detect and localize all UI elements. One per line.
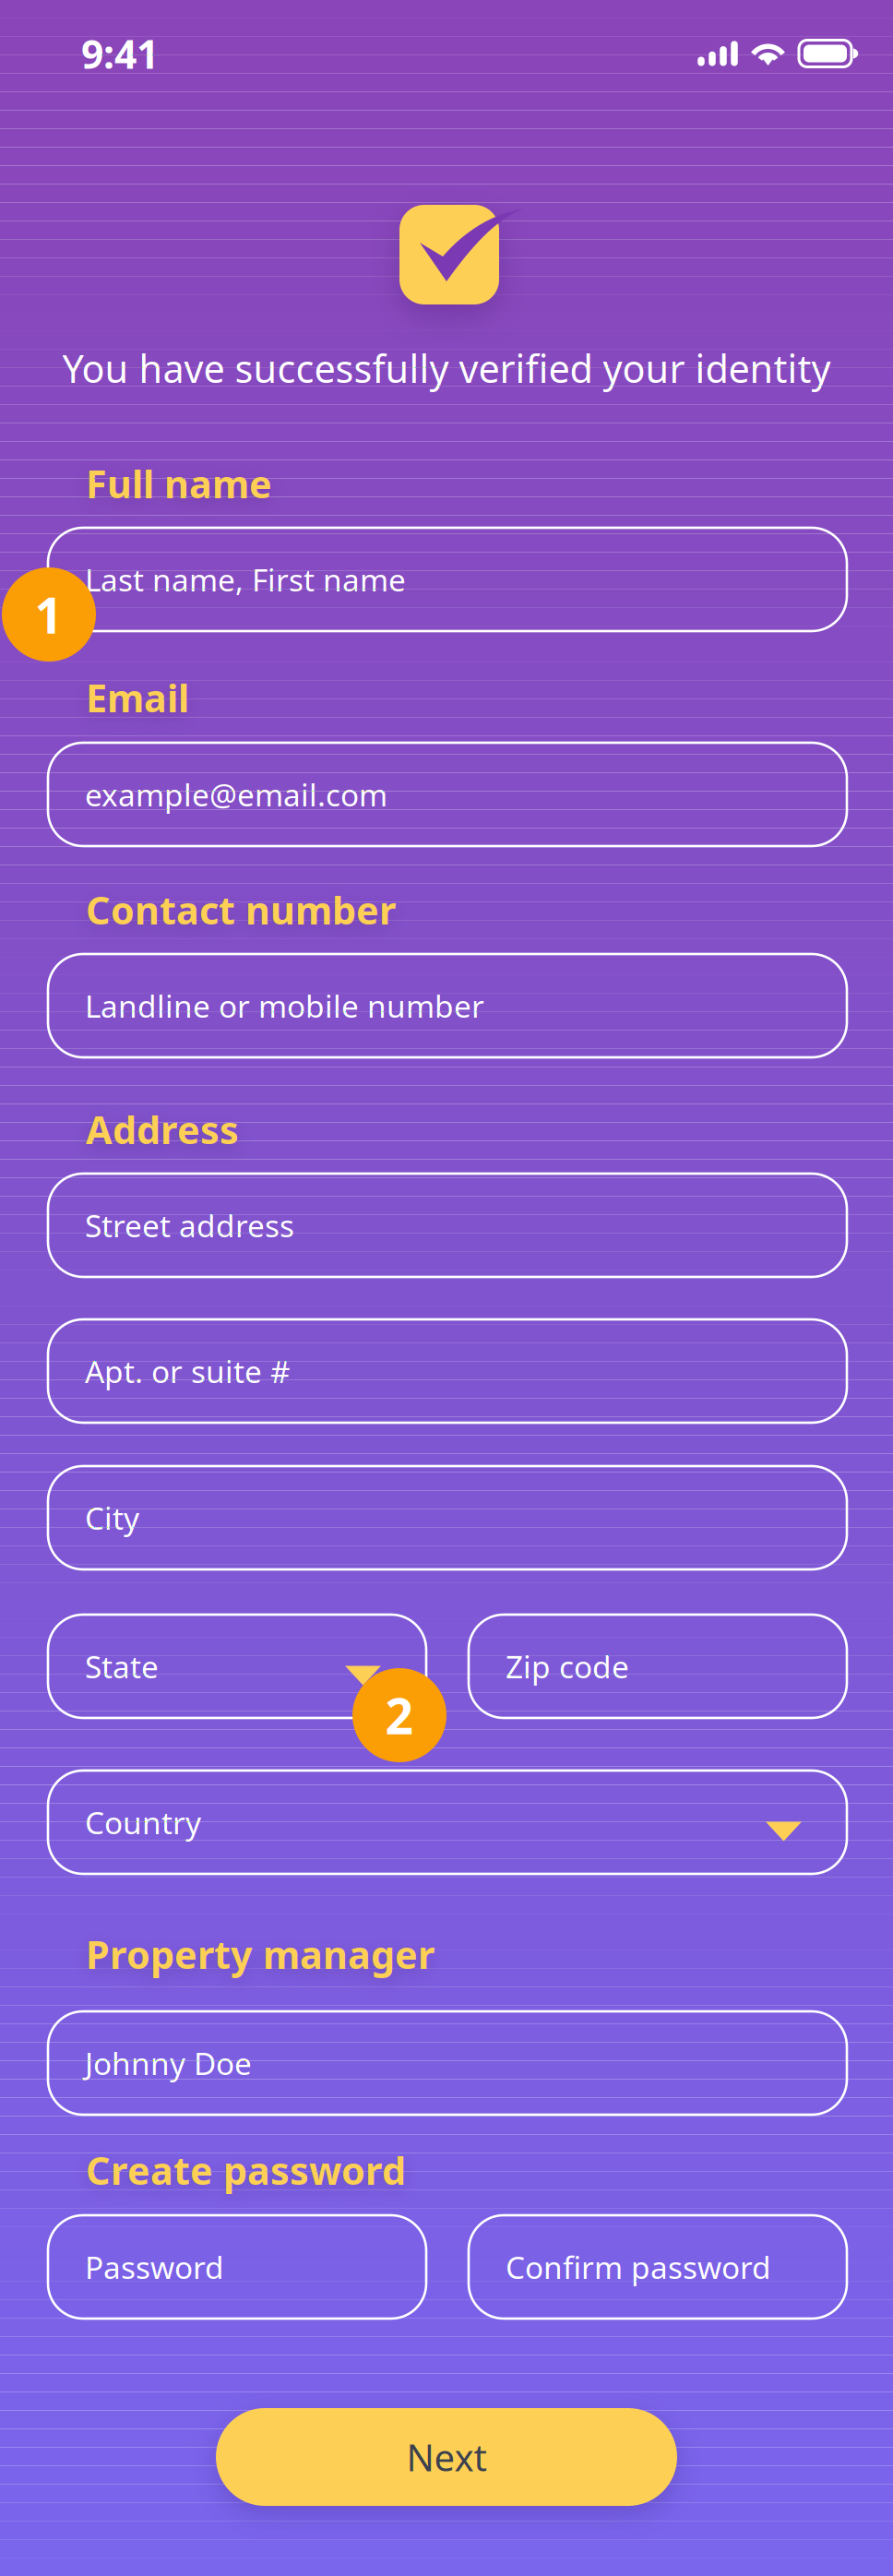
staticText: 2	[385, 1683, 414, 1748]
staticText: State	[85, 1646, 159, 1687]
staticText: 1	[35, 582, 63, 647]
button[interactable]: Last name, First name	[48, 528, 847, 631]
staticText: Next	[406, 2432, 487, 2481]
staticText: Password	[85, 2247, 224, 2287]
staticText: Create password	[86, 2145, 406, 2195]
staticText: Johnny Doe	[85, 2043, 252, 2083]
staticText: Apt. or suite #	[85, 1351, 291, 1392]
staticText: Zip code	[506, 1646, 629, 1687]
button[interactable]: Landline or mobile number	[48, 954, 847, 1057]
staticText: Address	[86, 1104, 239, 1155]
button[interactable]: example@email.com	[48, 743, 847, 846]
staticText: 9:41	[81, 27, 159, 80]
button[interactable]: Zip code	[469, 1615, 847, 1718]
button[interactable]: Country	[48, 1771, 847, 1874]
staticText: City	[85, 1497, 139, 1538]
staticText: example@email.com	[85, 774, 387, 815]
button[interactable]: Password	[48, 2215, 426, 2319]
staticText: Landline or mobile number	[85, 985, 484, 1026]
button[interactable]: Street address	[48, 1174, 847, 1277]
staticText: Street address	[85, 1205, 294, 1246]
staticText: Property manager	[86, 1929, 435, 1980]
button[interactable]: Confirm password	[469, 2215, 847, 2319]
staticText: Country	[85, 1802, 201, 1843]
button[interactable]: Johnny Doe	[48, 2011, 847, 2115]
button[interactable]: State	[48, 1615, 426, 1718]
staticText: Email	[86, 672, 189, 723]
button[interactable]: Apt. or suite #	[48, 1319, 847, 1423]
button[interactable]: City	[48, 1466, 847, 1569]
staticText: You have successfully verified your iden…	[62, 343, 831, 394]
staticText: Confirm password	[506, 2247, 771, 2287]
staticText: Full name	[86, 458, 272, 509]
staticText: Contact number	[86, 884, 396, 935]
button[interactable]: Next	[216, 2408, 677, 2506]
staticText: Last name, First name	[85, 559, 406, 600]
